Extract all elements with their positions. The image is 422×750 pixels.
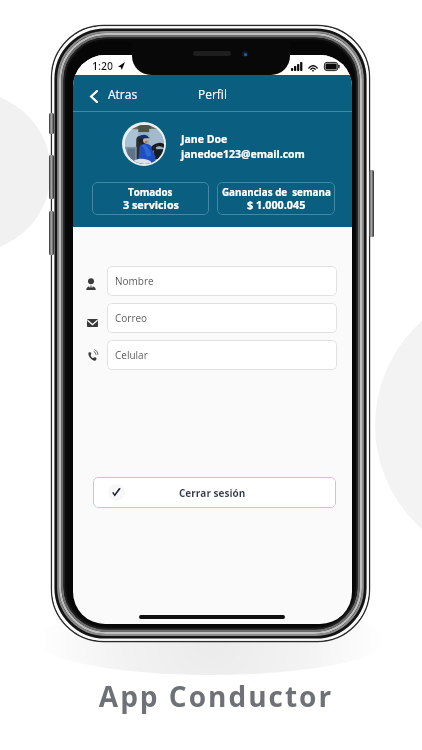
- staticText: Celular: [115, 348, 148, 362]
- staticText: 3 servicios: [123, 197, 179, 212]
- staticText: App Conductor: [5, 677, 422, 715]
- staticText: Tomados: [128, 186, 173, 199]
- button[interactable]: Celular: [107, 340, 337, 370]
- staticText: Perfil: [198, 86, 227, 102]
- button[interactable]: Ganancias de semana: [217, 182, 335, 215]
- button[interactable]: Nombre: [107, 266, 337, 296]
- staticText: Jane Doe: [181, 132, 228, 146]
- staticText: Cerrar sesión: [179, 486, 246, 500]
- staticText: 1:20: [92, 59, 113, 73]
- staticText: Atras: [108, 86, 138, 102]
- button[interactable]: Atras: [84, 81, 144, 107]
- button[interactable]: Correo: [107, 303, 337, 333]
- staticText: Nombre: [115, 274, 154, 288]
- staticText: Correo: [115, 311, 148, 325]
- staticText: janedoe123@email.com: [181, 147, 305, 161]
- staticText: Ganancias de semana: [222, 186, 331, 199]
- staticText: $ 1.000.045: [247, 197, 306, 212]
- button[interactable]: Tomados: [92, 182, 209, 215]
- button[interactable]: Cerrar sesión: [93, 477, 336, 508]
